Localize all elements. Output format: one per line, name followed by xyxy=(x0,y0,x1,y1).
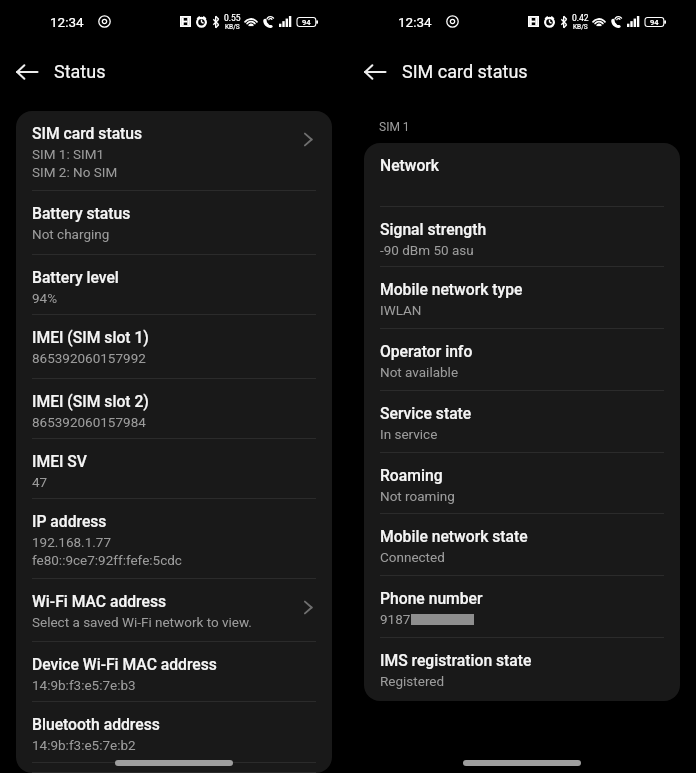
staticText: -90 dBm 50 asu xyxy=(380,242,474,258)
button[interactable]: Back xyxy=(9,54,45,90)
button[interactable]: Service state xyxy=(364,391,680,453)
button[interactable]: IMEI SV xyxy=(16,439,332,499)
staticText: Roaming xyxy=(380,466,443,484)
staticText: 12:34 xyxy=(398,14,432,30)
staticText: IMEI (SIM slot 2) xyxy=(32,392,149,410)
staticText: IP address xyxy=(32,512,107,530)
staticText: Operator info xyxy=(380,342,473,360)
staticText: 192.168.1.77 xyxy=(32,534,111,550)
staticText: Battery status xyxy=(32,204,131,222)
staticText: 14:9b:f3:e5:7e:b2 xyxy=(32,737,136,753)
staticText: Registered xyxy=(380,673,445,689)
button[interactable]: IMEI (SIM slot 1) xyxy=(16,315,332,379)
button[interactable]: IP address xyxy=(16,499,332,579)
staticText: IMEI (SIM slot 1) xyxy=(32,328,149,346)
button[interactable]: SIM card status xyxy=(16,111,332,191)
staticText: Battery level xyxy=(32,268,119,286)
button[interactable]: Device Wi-Fi MAC address xyxy=(16,642,332,702)
staticText: SIM card status xyxy=(32,124,143,142)
staticText: 94 xyxy=(650,18,659,27)
staticText: 9187 xyxy=(380,611,411,627)
staticText: Not available xyxy=(380,364,459,380)
staticText: Not roaming xyxy=(380,488,455,504)
staticText: SIM 2: No SIM xyxy=(32,164,118,180)
staticText: IMEI SV xyxy=(32,452,87,470)
button[interactable]: Signal strength xyxy=(364,207,680,267)
button[interactable]: Mobile network state xyxy=(364,514,680,576)
button[interactable]: Up time xyxy=(16,763,332,773)
staticText: Mobile network type xyxy=(380,280,523,298)
button[interactable]: Bluetooth address xyxy=(16,702,332,763)
button[interactable]: Wi-Fi MAC address xyxy=(16,579,332,642)
staticText: Mobile network state xyxy=(380,527,528,545)
staticText: IMS registration state xyxy=(380,651,532,669)
button[interactable]: Back xyxy=(357,54,393,90)
button[interactable]: Mobile network type xyxy=(364,267,680,329)
staticText: In service xyxy=(380,426,438,442)
staticText: Connected xyxy=(380,549,445,565)
button[interactable]: Operator info xyxy=(364,329,680,391)
staticText: 865392060157984 xyxy=(32,414,146,430)
staticText: KB/S xyxy=(573,23,588,31)
staticText: 0.55 xyxy=(224,13,241,23)
staticText: Phone number xyxy=(380,589,483,607)
staticText: 865392060157992 xyxy=(32,350,146,366)
button[interactable]: Battery status xyxy=(16,191,332,255)
staticText: 94 xyxy=(302,18,311,27)
staticText: Bluetooth address xyxy=(32,715,160,733)
button[interactable]: Network xyxy=(364,143,680,207)
button[interactable]: Roaming xyxy=(364,453,680,514)
staticText: 0.42 xyxy=(572,13,589,23)
staticText: Not charging xyxy=(32,226,110,242)
button[interactable]: Battery level xyxy=(16,255,332,315)
button[interactable]: IMEI (SIM slot 2) xyxy=(16,379,332,439)
staticText: SIM card status xyxy=(402,61,528,82)
staticText: 12:34 xyxy=(50,14,84,30)
staticText: IWLAN xyxy=(380,302,422,318)
staticText: SIM 1 xyxy=(379,120,410,134)
staticText: SIM 1: SIM1 xyxy=(32,146,105,162)
staticText: Service state xyxy=(380,404,472,422)
staticText: 94% xyxy=(32,290,58,306)
staticText: Signal strength xyxy=(380,220,487,238)
staticText: 47 xyxy=(32,474,48,490)
staticText: Wi-Fi MAC address xyxy=(32,592,167,610)
staticText: Status xyxy=(54,61,106,82)
staticText: 14:9b:f3:e5:7e:b3 xyxy=(32,677,136,693)
button[interactable]: Phone number xyxy=(364,576,680,638)
staticText: Network xyxy=(380,156,440,174)
button[interactable]: IMS registration state xyxy=(364,638,680,701)
staticText: KB/S xyxy=(225,23,240,31)
staticText: Device Wi-Fi MAC address xyxy=(32,655,217,673)
staticText: fe80::9ce7:92ff:fefe:5cdc xyxy=(32,552,182,568)
staticText: Select a saved Wi-Fi network to view. xyxy=(32,614,252,630)
